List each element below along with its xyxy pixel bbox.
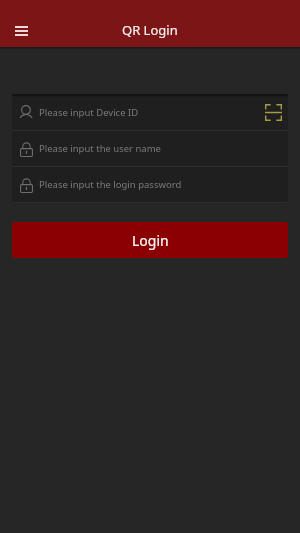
button[interactable]: Login (12, 222, 288, 258)
staticText: QR Login (122, 21, 178, 39)
button[interactable]: Please input Device ID (12, 94, 288, 130)
staticText: Please input the login password (39, 178, 182, 191)
button[interactable]: Please input the login password (12, 167, 288, 202)
staticText: Login (132, 231, 169, 250)
button[interactable]: Menu (7, 17, 35, 45)
button[interactable]: Please input the user name (12, 131, 288, 166)
staticText: Please input Device ID (39, 106, 139, 119)
staticText: Please input the user name (39, 142, 161, 155)
button[interactable]: Scan QR code (259, 94, 288, 130)
